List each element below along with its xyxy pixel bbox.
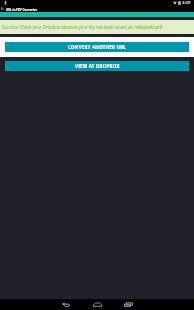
staticText: 3:39 — [182, 0, 191, 6]
button[interactable]: Back — [55, 299, 76, 310]
button[interactable]: Home — [87, 299, 108, 310]
button[interactable]: CONVERT ANOTHER URL — [5, 42, 189, 52]
button[interactable]: VIEW AT DROPBOX — [5, 61, 189, 71]
button[interactable]: Recent apps — [118, 299, 139, 310]
staticText: Success: Check your Dropbox because your… — [2, 24, 163, 30]
staticText: VIEW AT DROPBOX — [75, 63, 120, 69]
staticText: URL to PDF Converter — [6, 8, 37, 12]
staticText: CONVERT ANOTHER URL — [68, 44, 127, 50]
